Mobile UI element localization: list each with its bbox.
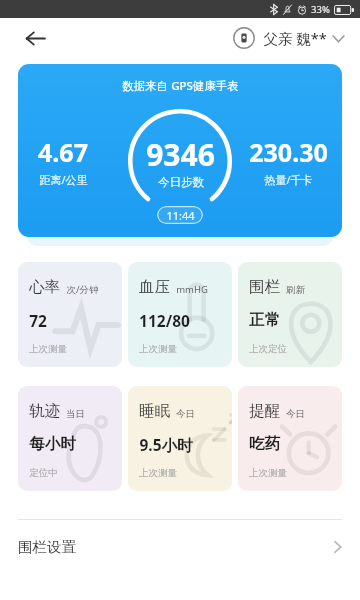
staticText: 上次测量	[139, 467, 177, 479]
staticText: 吃药	[249, 434, 280, 454]
staticText: 定位中	[29, 467, 58, 479]
staticText: 上次测量	[29, 343, 67, 355]
staticText: 11:44	[166, 208, 195, 223]
button[interactable]: 提醒	[238, 386, 342, 491]
staticText: 次/分钟	[66, 283, 99, 296]
staticText: 每小时	[29, 434, 76, 454]
button[interactable]: 轨迹	[18, 386, 122, 491]
staticText: 4.67	[38, 135, 88, 169]
button[interactable]: 血压	[128, 262, 232, 367]
staticText: 数据来自 GPS健康手表	[122, 78, 239, 94]
button[interactable]: 围栏设置	[0, 520, 360, 573]
staticText: 提醒	[249, 401, 280, 421]
staticText: 上次测量	[139, 343, 177, 355]
staticText: 刷新	[286, 284, 305, 296]
staticText: mmHG	[176, 283, 208, 296]
staticText: 距离/公里	[39, 172, 88, 187]
staticText: 轨迹	[29, 401, 60, 421]
staticText: 上次测量	[249, 467, 287, 479]
staticText: 围栏	[249, 277, 280, 297]
staticText: 心率	[29, 277, 60, 297]
button[interactable]: 睡眠	[128, 386, 232, 491]
staticText: 围栏设置	[18, 538, 76, 556]
staticText: 上次定位	[249, 343, 287, 355]
staticText: 72	[29, 310, 47, 331]
staticText: 父亲 魏**	[263, 28, 327, 48]
staticText: 112/80	[139, 310, 190, 331]
staticText: 9.5小时	[139, 434, 193, 455]
staticText: 当日	[66, 408, 85, 420]
button[interactable]: 围栏	[238, 262, 342, 367]
staticText: 血压	[139, 277, 170, 297]
button[interactable]: 心率	[18, 262, 122, 367]
staticText: 33%	[311, 3, 330, 16]
staticText: 今日	[176, 408, 195, 420]
staticText: 9346	[146, 134, 215, 175]
button[interactable]: Back	[18, 21, 52, 55]
button[interactable]: 父亲 魏**	[233, 27, 344, 49]
staticText: 今日步数	[158, 175, 204, 189]
staticText: 今日	[286, 408, 305, 420]
staticText: 230.30	[249, 135, 328, 169]
staticText: 正常	[249, 310, 280, 330]
staticText: 睡眠	[139, 401, 170, 421]
staticText: 热量/千卡	[264, 172, 313, 187]
button[interactable]: 数据来自 GPS健康手表	[18, 64, 342, 237]
